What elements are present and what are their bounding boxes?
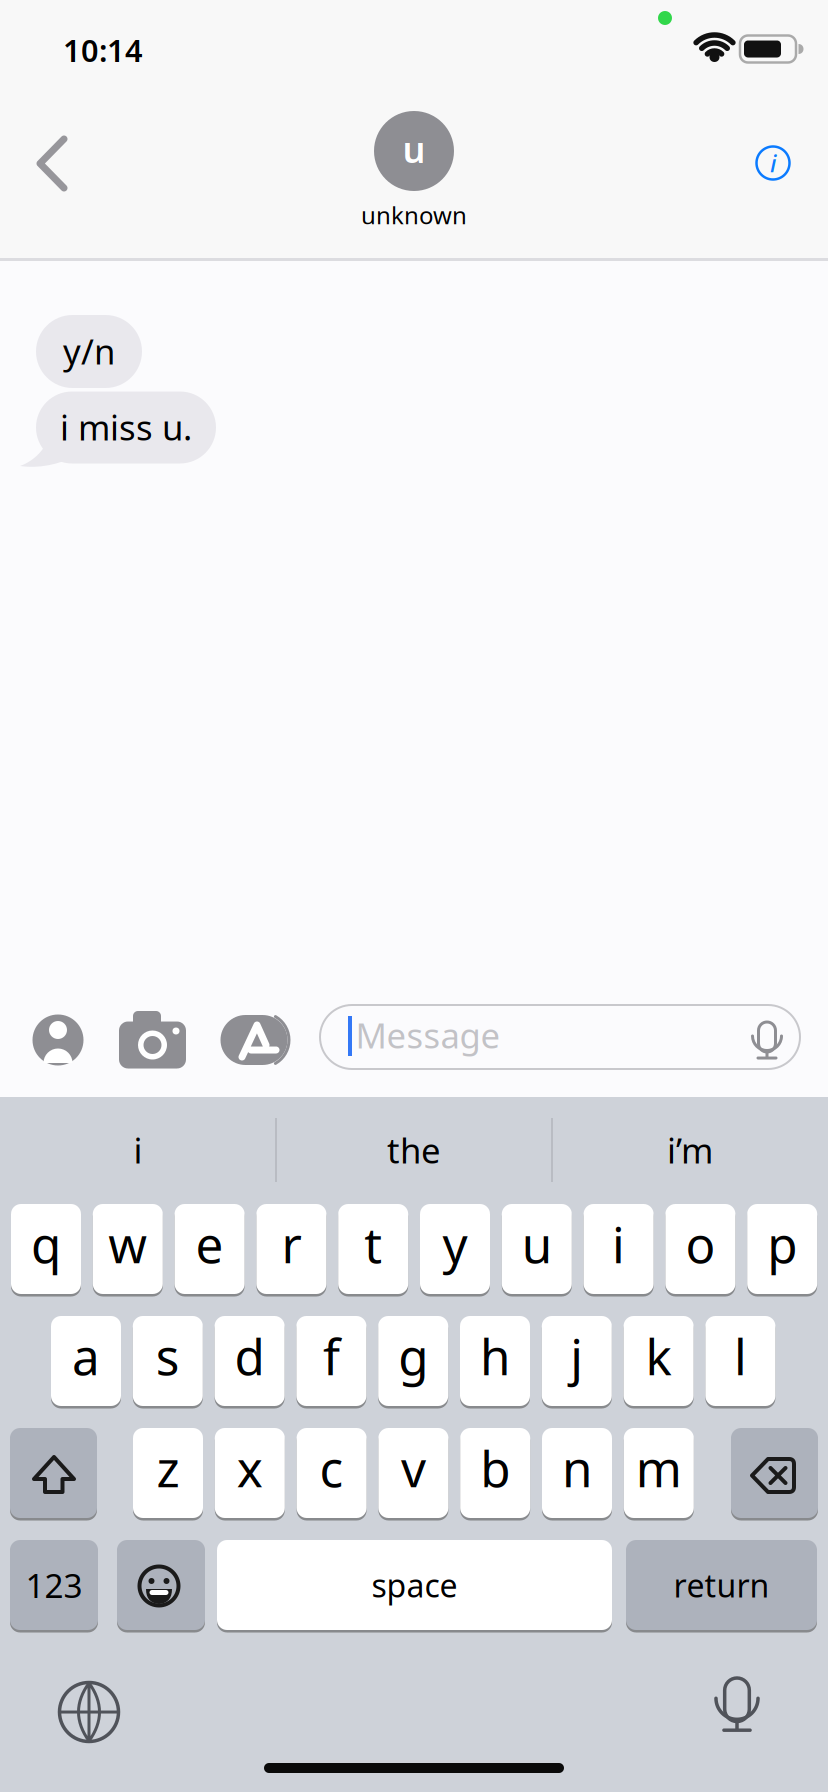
staticText: i miss u. [60,404,192,450]
button[interactable]: y [420,1202,490,1295]
staticText: o [685,1211,715,1277]
button[interactable] [32,1014,84,1066]
staticText: n [562,1435,592,1501]
button[interactable]: q [11,1202,81,1295]
staticText: space [371,1564,457,1606]
button[interactable] [731,1426,818,1519]
button[interactable]: the [279,1105,549,1195]
button[interactable]: return [626,1538,817,1631]
button[interactable] [10,1426,97,1519]
button[interactable]: x [215,1426,285,1519]
button[interactable]: f [296,1314,366,1407]
button[interactable]: l [705,1314,775,1407]
staticText: 10:14 [63,30,143,70]
button[interactable] [22,128,82,198]
button[interactable]: s [133,1314,203,1407]
button[interactable]: v [378,1426,448,1519]
staticText: i [612,1211,625,1277]
staticText: u [402,125,425,173]
button[interactable]: z [133,1426,203,1519]
button[interactable] [117,1538,205,1631]
button[interactable]: e [175,1202,245,1295]
button[interactable] [110,1000,194,1080]
button[interactable]: p [747,1202,817,1295]
staticText: i [770,147,776,179]
staticText: v [401,1435,426,1501]
staticText: w [108,1211,147,1277]
button[interactable]: w [93,1202,163,1295]
button[interactable]: space [217,1538,612,1631]
button[interactable]: i [584,1202,654,1295]
button[interactable]: i [753,143,793,183]
button[interactable]: j [542,1314,612,1407]
button[interactable]: g [378,1314,448,1407]
button[interactable]: 123 [10,1538,98,1631]
staticText: s [156,1323,180,1389]
button[interactable]: Message [315,1002,805,1072]
button[interactable]: i [3,1105,273,1195]
staticText: y [442,1211,467,1277]
button[interactable]: k [624,1314,694,1407]
staticText: return [673,1564,769,1606]
staticText: b [480,1435,510,1501]
button[interactable] [699,1672,775,1748]
staticText: u [522,1211,552,1277]
button[interactable]: t [338,1202,408,1295]
button[interactable]: a [51,1314,121,1407]
staticText: d [235,1323,265,1389]
staticText: r [281,1211,301,1277]
button[interactable]: n [542,1426,612,1519]
button[interactable]: d [215,1314,285,1407]
staticText: the [387,1127,441,1173]
staticText: x [237,1435,263,1501]
button[interactable] [51,1674,127,1750]
button[interactable] [211,1008,301,1072]
staticText: j [570,1323,583,1389]
staticText: m [636,1435,682,1501]
staticText: q [31,1211,61,1277]
staticText: i [133,1127,142,1173]
button[interactable]: r [256,1202,326,1295]
staticText: l [734,1323,747,1389]
staticText: g [398,1323,428,1389]
staticText: unknown [361,199,467,231]
staticText: f [323,1323,340,1389]
staticText: y/n [63,328,115,374]
button[interactable]: c [297,1426,367,1519]
button[interactable]: m [624,1426,694,1519]
button[interactable]: o [665,1202,735,1295]
staticText: e [196,1211,224,1277]
staticText: t [364,1211,382,1277]
button[interactable]: u [374,111,454,191]
staticText: 123 [25,1563,82,1607]
button[interactable]: i’m [555,1105,825,1195]
staticText: h [480,1323,510,1389]
staticText: k [646,1323,672,1389]
button[interactable]: b [460,1426,530,1519]
staticText: a [72,1323,100,1389]
button[interactable]: u [502,1202,572,1295]
staticText: i’m [667,1127,713,1173]
staticText: c [320,1435,344,1501]
staticText: p [767,1211,797,1277]
staticText: Message [355,1012,500,1058]
button[interactable]: h [460,1314,530,1407]
staticText: z [156,1435,179,1501]
